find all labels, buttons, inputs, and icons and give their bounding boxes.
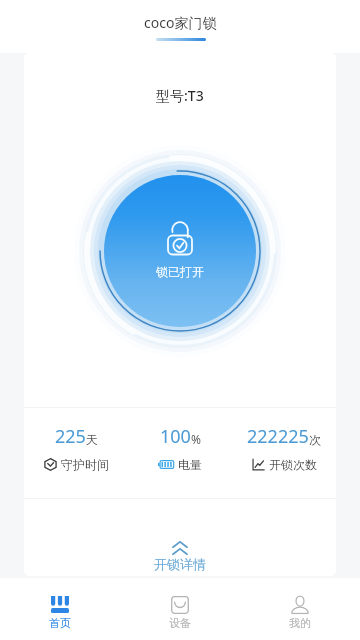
staticText: 设备 bbox=[169, 616, 191, 630]
staticText: 次 bbox=[309, 432, 321, 447]
staticText: 锁已打开 bbox=[156, 264, 204, 279]
staticText: 天 bbox=[86, 432, 98, 447]
staticText: 开锁详情 bbox=[154, 556, 206, 571]
staticText: 守护时间 bbox=[61, 457, 109, 472]
staticText: 225 bbox=[55, 424, 86, 449]
staticText: 100 bbox=[160, 424, 191, 449]
staticText: 首页 bbox=[49, 616, 71, 630]
staticText: 电量 bbox=[178, 457, 202, 472]
staticText: coco家门锁 bbox=[144, 13, 217, 32]
button[interactable]: 225 bbox=[24, 420, 128, 476]
button[interactable]: 开锁详情 bbox=[128, 536, 232, 576]
button[interactable]: Profile bbox=[240, 578, 360, 640]
staticText: 型号:T3 bbox=[156, 86, 204, 105]
staticText: 我的 bbox=[289, 616, 311, 630]
button[interactable]: Home bbox=[0, 578, 120, 640]
staticText: % bbox=[191, 431, 201, 447]
staticText: 222225 bbox=[247, 424, 309, 449]
button[interactable]: Devices bbox=[120, 578, 240, 640]
staticText: 开锁次数 bbox=[269, 457, 317, 472]
button[interactable]: 100 bbox=[128, 420, 232, 476]
button[interactable]: 222225 bbox=[232, 420, 336, 476]
